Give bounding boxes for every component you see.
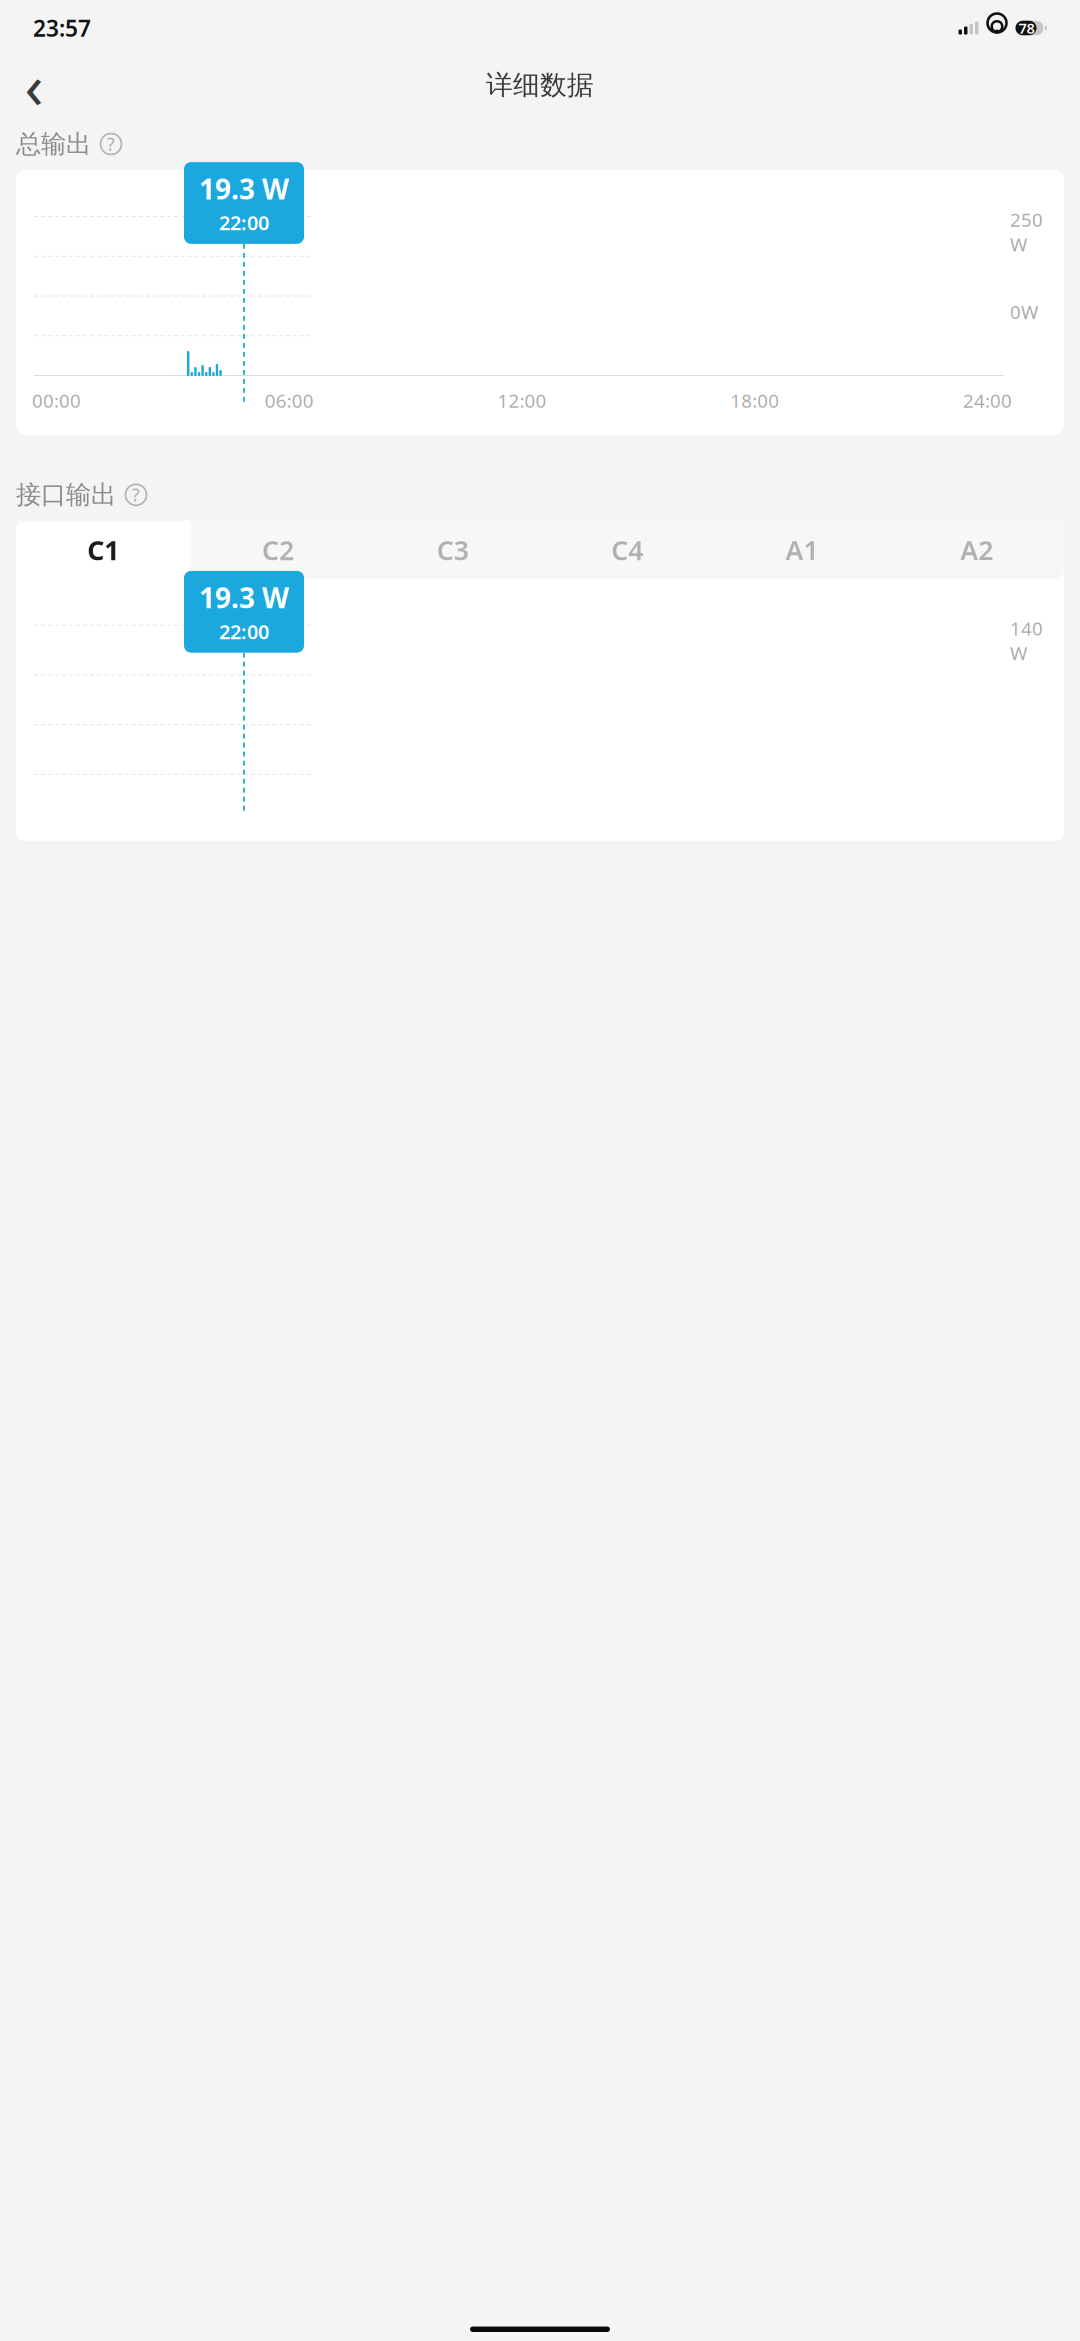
- staticText: 总输出: [16, 128, 91, 159]
- staticText: ‹: [24, 44, 43, 126]
- staticText: A2: [960, 532, 993, 567]
- button[interactable]: C1: [16, 521, 191, 579]
- button[interactable]: A1: [715, 521, 889, 579]
- staticText: 22:00: [219, 209, 269, 236]
- button[interactable]: C4: [540, 521, 715, 579]
- staticText: 00:00: [32, 388, 81, 413]
- staticText: 140W: [1010, 616, 1043, 665]
- button[interactable]: 返回: [10, 61, 58, 109]
- staticText: ?: [132, 483, 140, 506]
- staticText: 06:00: [265, 388, 314, 413]
- staticText: 12:00: [497, 388, 546, 413]
- button[interactable]: A2: [889, 521, 1064, 579]
- staticText: C3: [437, 532, 469, 567]
- button[interactable]: 说明: [95, 128, 127, 160]
- staticText: 19.3 W: [199, 170, 289, 207]
- staticText: 250W: [1010, 207, 1043, 257]
- staticText: 接口输出: [16, 479, 116, 510]
- staticText: 22:00: [219, 618, 269, 645]
- staticText: 23:57: [33, 13, 91, 43]
- staticText: C4: [611, 532, 643, 567]
- staticText: 18:00: [730, 388, 779, 413]
- button[interactable]: C3: [365, 521, 540, 579]
- staticText: A1: [785, 532, 818, 567]
- staticText: 24:00: [963, 388, 1012, 413]
- staticText: 0W: [1010, 299, 1038, 324]
- staticText: 78: [1018, 18, 1034, 38]
- staticText: C1: [87, 532, 119, 567]
- button[interactable]: C2: [191, 521, 365, 579]
- staticText: ?: [107, 132, 115, 155]
- staticText: C2: [262, 532, 294, 567]
- staticText: 详细数据: [486, 69, 594, 101]
- staticText: 19.3 W: [199, 579, 289, 616]
- button[interactable]: 说明: [120, 479, 152, 511]
